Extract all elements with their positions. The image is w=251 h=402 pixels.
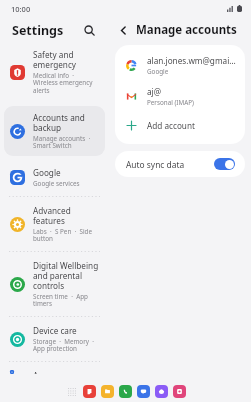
staticText: Medical info · Wireless emergency alerts bbox=[33, 71, 99, 95]
button[interactable]: Search settings bbox=[79, 20, 99, 40]
staticText: Storage · Memory · App protection bbox=[33, 337, 99, 353]
button[interactable]: Safety and emergency bbox=[4, 43, 105, 101]
button[interactable]: Accounts and backup bbox=[4, 106, 105, 156]
staticText: Labs · S Pen · Side button bbox=[33, 227, 99, 243]
staticText: Auto sync data bbox=[126, 159, 185, 170]
staticText: Digital Wellbeing and parental controls bbox=[33, 260, 99, 291]
button[interactable]: Phone bbox=[119, 385, 132, 398]
staticText: Manage accounts bbox=[136, 22, 237, 38]
button[interactable]: Apps bbox=[4, 364, 105, 380]
staticText: Settings bbox=[12, 22, 64, 39]
button[interactable]: Auto sync data toggle, on bbox=[214, 158, 235, 170]
staticText: Manage accounts · Smart Switch bbox=[33, 134, 99, 150]
button[interactable]: Device care bbox=[4, 319, 105, 359]
staticText: 10:00 bbox=[11, 4, 31, 14]
button[interactable]: Gallery bbox=[173, 385, 186, 398]
button[interactable]: alan.jones.wm@gmail.com bbox=[115, 50, 245, 81]
button[interactable]: aj@ bbox=[115, 81, 245, 112]
button[interactable]: Digital Wellbeing and parental controls bbox=[4, 254, 105, 314]
button[interactable]: Messages bbox=[137, 385, 150, 398]
staticText: alan.jones.wm@gmail.com bbox=[147, 55, 236, 66]
staticText: Screen time · App timers bbox=[33, 292, 99, 308]
button[interactable]: Auto sync data bbox=[115, 151, 245, 177]
button[interactable]: Notes bbox=[83, 385, 96, 398]
staticText: Google bbox=[147, 67, 169, 76]
button[interactable]: My Files bbox=[101, 385, 114, 398]
staticText: Accounts and backup bbox=[33, 112, 99, 133]
button[interactable]: Internet bbox=[155, 385, 168, 398]
staticText: Google services bbox=[33, 179, 80, 188]
button[interactable]: Navigate back bbox=[113, 20, 133, 40]
staticText: Device care bbox=[33, 325, 77, 336]
button[interactable]: All apps bbox=[65, 385, 78, 398]
staticText: aj@ bbox=[147, 86, 162, 97]
staticText: Apps bbox=[33, 370, 53, 374]
staticText: Advanced features bbox=[33, 205, 99, 226]
button[interactable]: Google bbox=[4, 161, 105, 194]
button[interactable]: Advanced features bbox=[4, 199, 105, 249]
button[interactable]: Add account bbox=[115, 112, 245, 139]
staticText: Add account bbox=[147, 120, 195, 131]
staticText: Personal (IMAP) bbox=[147, 98, 194, 107]
staticText: Google bbox=[33, 167, 61, 178]
staticText: Safety and emergency bbox=[33, 49, 99, 70]
